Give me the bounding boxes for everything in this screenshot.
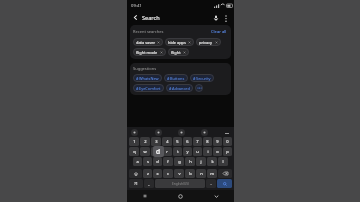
button[interactable]: 2: [140, 137, 150, 146]
staticText: Advanced: [172, 86, 190, 91]
button[interactable]: 3: [151, 137, 161, 146]
button[interactable]: Search: [217, 179, 232, 188]
staticText: ,: [148, 181, 150, 186]
button[interactable]: u: [193, 147, 202, 156]
button[interactable]: 5: [173, 137, 182, 146]
staticText: i: [207, 149, 209, 154]
button[interactable]: Stickers: [155, 129, 162, 136]
staticText: j: [200, 159, 202, 164]
staticText: Buttons: [170, 76, 185, 81]
staticText: 8: [206, 139, 209, 144]
button[interactable]: Voice search: [210, 12, 221, 23]
button[interactable]: r: [162, 147, 172, 156]
staticText: f: [167, 159, 169, 164]
button[interactable]: Clipboard: [131, 129, 138, 136]
button[interactable]: English(US): [155, 179, 205, 188]
button[interactable]: 4: [162, 137, 172, 146]
button[interactable]: #: [190, 74, 214, 82]
button[interactable]: Clear all: [210, 28, 228, 35]
staticText: x: [156, 171, 159, 176]
button[interactable]: .: [206, 179, 216, 188]
button[interactable]: #: [133, 84, 164, 92]
button[interactable]: 7: [193, 137, 202, 146]
button[interactable]: ?1: [129, 179, 143, 188]
staticText: 09:41: [131, 3, 142, 9]
button[interactable]: flight mode: [133, 48, 166, 56]
button[interactable]: h: [185, 157, 195, 166]
button[interactable]: #: [166, 84, 193, 92]
staticText: Search: [142, 14, 160, 22]
staticText: Suggestions: [133, 66, 157, 71]
button[interactable]: j: [196, 157, 206, 166]
button[interactable]: Home: [162, 190, 198, 202]
button[interactable]: Settings: [201, 129, 208, 136]
staticText: w: [143, 149, 147, 154]
staticText: 3: [155, 139, 158, 144]
button[interactable]: More suggestions: [195, 84, 203, 92]
staticText: g: [178, 159, 181, 164]
button[interactable]: hide apps: [165, 38, 194, 46]
button[interactable]: o: [213, 147, 222, 156]
button[interactable]: Backspace: [218, 169, 232, 178]
button[interactable]: y: [183, 147, 192, 156]
button[interactable]: d: [153, 157, 162, 166]
button[interactable]: #: [133, 74, 162, 82]
staticText: p: [226, 149, 229, 154]
staticText: hide apps: [168, 40, 186, 45]
button[interactable]: e: [151, 147, 161, 156]
button[interactable]: Themes: [178, 129, 185, 136]
button[interactable]: ,: [144, 179, 154, 188]
staticText: v: [178, 171, 181, 176]
button[interactable]: Back: [130, 12, 141, 23]
button[interactable]: k: [207, 157, 217, 166]
button[interactable]: Recents: [127, 190, 162, 202]
button[interactable]: z: [143, 169, 152, 178]
button[interactable]: data saver: [133, 38, 163, 46]
button[interactable]: 1: [129, 137, 139, 146]
button[interactable]: t: [173, 147, 182, 156]
button[interactable]: m: [207, 169, 217, 178]
staticText: y: [186, 149, 189, 154]
staticText: #: [136, 86, 139, 91]
button[interactable]: s: [143, 157, 152, 166]
staticText: Security: [196, 76, 211, 81]
button[interactable]: g: [174, 157, 184, 166]
staticText: 4: [166, 139, 169, 144]
button[interactable]: a: [133, 157, 142, 166]
button[interactable]: 0: [223, 137, 232, 146]
button[interactable]: v: [174, 169, 184, 178]
staticText: #: [169, 86, 172, 91]
button[interactable]: p: [223, 147, 232, 156]
button[interactable]: i: [203, 147, 212, 156]
button[interactable]: #: [164, 74, 188, 82]
staticText: q: [133, 149, 136, 154]
button[interactable]: 8: [203, 137, 212, 146]
staticText: #: [136, 76, 139, 81]
button[interactable]: c: [163, 169, 173, 178]
button[interactable]: 9: [213, 137, 222, 146]
staticText: 5: [176, 139, 179, 144]
button[interactable]: b: [185, 169, 195, 178]
staticText: s: [147, 159, 149, 164]
button[interactable]: Shift: [129, 169, 142, 178]
button[interactable]: w: [140, 147, 150, 156]
button[interactable]: privacy: [196, 38, 221, 46]
staticText: d: [156, 147, 161, 156]
staticText: c: [167, 171, 169, 176]
button[interactable]: x: [153, 169, 162, 178]
staticText: ?1: [134, 181, 138, 186]
staticText: b: [189, 171, 192, 176]
button[interactable]: f: [163, 157, 173, 166]
staticText: t: [177, 149, 179, 154]
button[interactable]: q: [129, 147, 139, 156]
button[interactable]: flight: [168, 48, 189, 56]
button[interactable]: More options: [221, 13, 231, 23]
staticText: z: [147, 171, 149, 176]
button[interactable]: n: [196, 169, 206, 178]
button[interactable]: 6: [183, 137, 192, 146]
button[interactable]: Hide toolbar: [224, 130, 230, 136]
staticText: m: [210, 171, 214, 176]
button[interactable]: Back: [198, 190, 234, 202]
button[interactable]: l: [218, 157, 228, 166]
staticText: l: [222, 159, 224, 164]
